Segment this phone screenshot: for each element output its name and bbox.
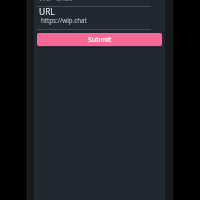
staticText: URL: [39, 6, 55, 17]
staticText: WIP Chat: [39, 0, 73, 3]
button[interactable]: Submit: [37, 33, 162, 46]
staticText: Submit: [88, 35, 112, 45]
staticText: https://wip.chat: [41, 16, 87, 24]
